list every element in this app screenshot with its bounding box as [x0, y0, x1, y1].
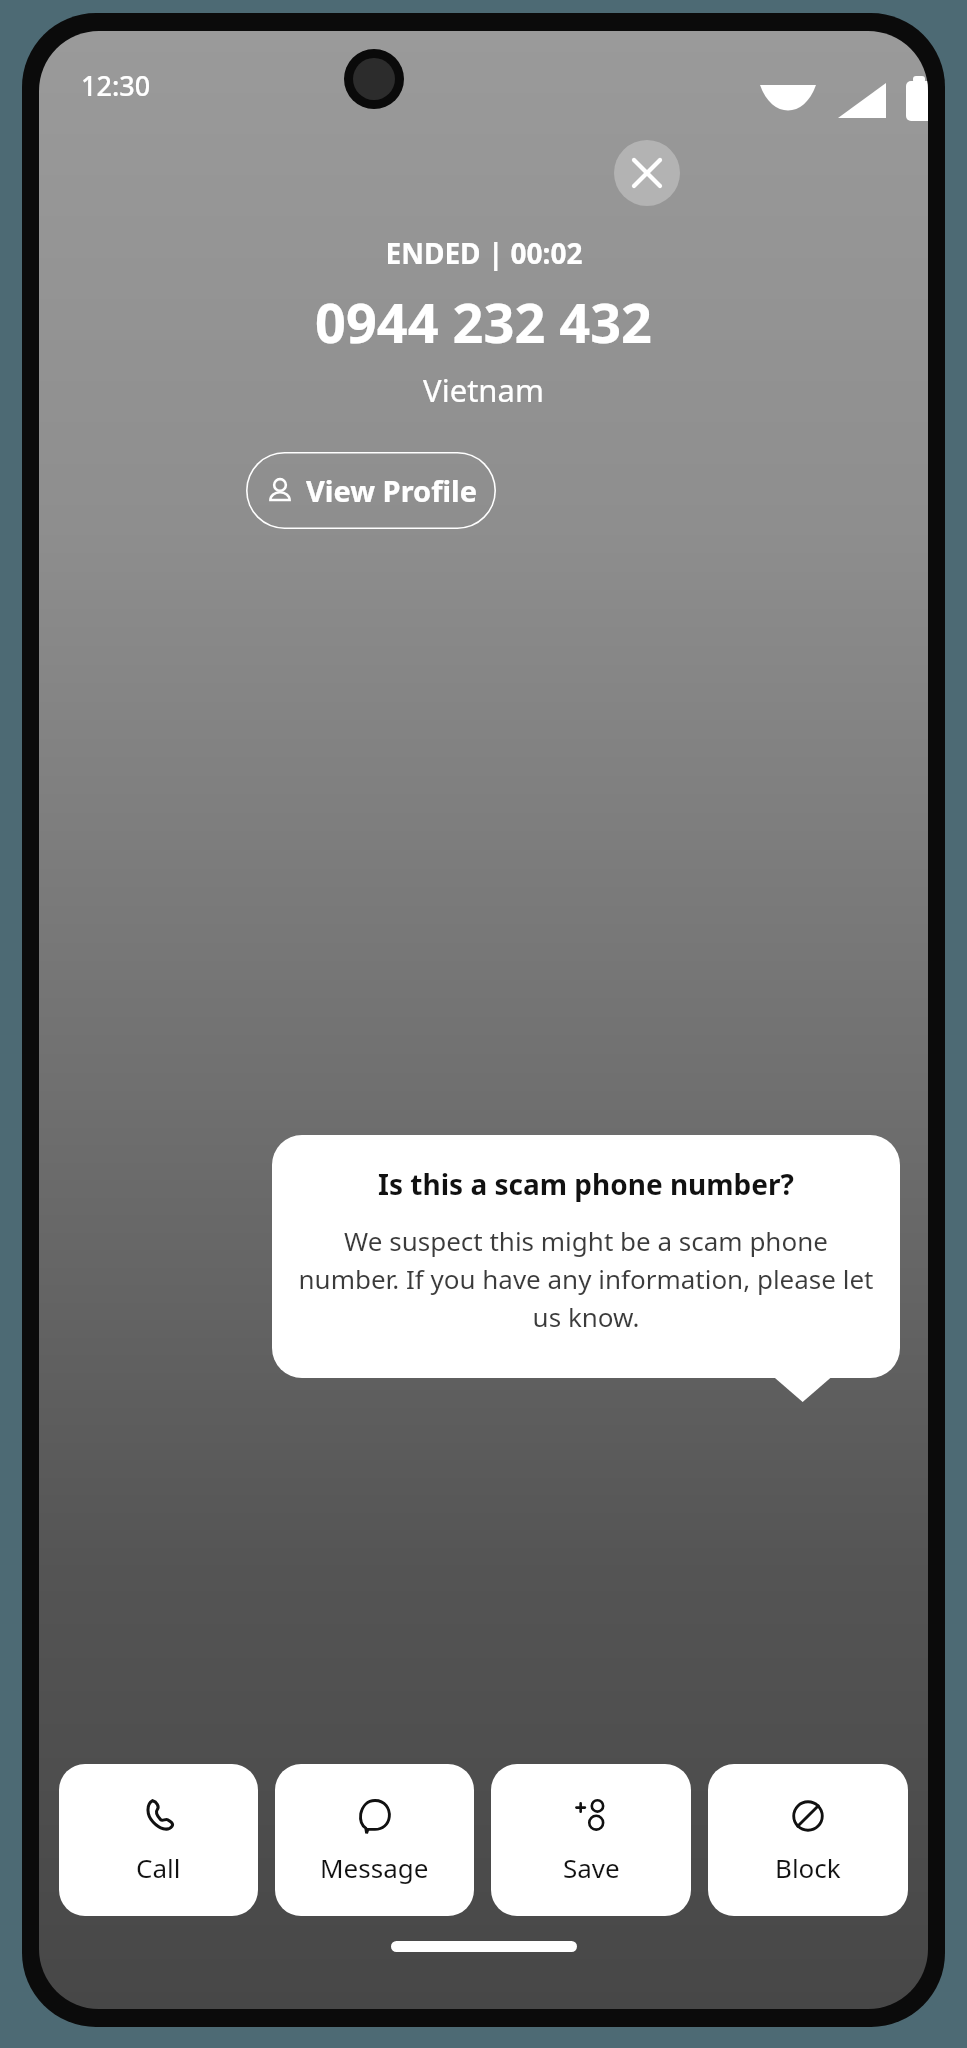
button[interactable]: Block — [708, 1764, 908, 1916]
staticText: Message — [320, 1850, 429, 1885]
staticText: We suspect this might be a scam phone nu… — [298, 1223, 874, 1334]
staticText: Is this a scam phone number? — [378, 1165, 794, 1203]
staticText: Call — [136, 1850, 181, 1885]
button[interactable]: View Profile — [246, 452, 496, 529]
staticText: Vietnam — [423, 369, 544, 411]
staticText: Save — [563, 1850, 620, 1885]
button[interactable]: Close — [614, 140, 680, 206]
staticText: ENDED | 00:02 — [385, 234, 583, 272]
button[interactable]: Call — [59, 1764, 258, 1916]
staticText: View Profile — [306, 471, 477, 510]
button[interactable]: Message — [275, 1764, 474, 1916]
staticText: 0944 232 432 — [315, 285, 652, 359]
staticText: 12:30 — [81, 67, 151, 104]
staticText: Block — [775, 1850, 841, 1885]
button[interactable]: Save — [491, 1764, 691, 1916]
